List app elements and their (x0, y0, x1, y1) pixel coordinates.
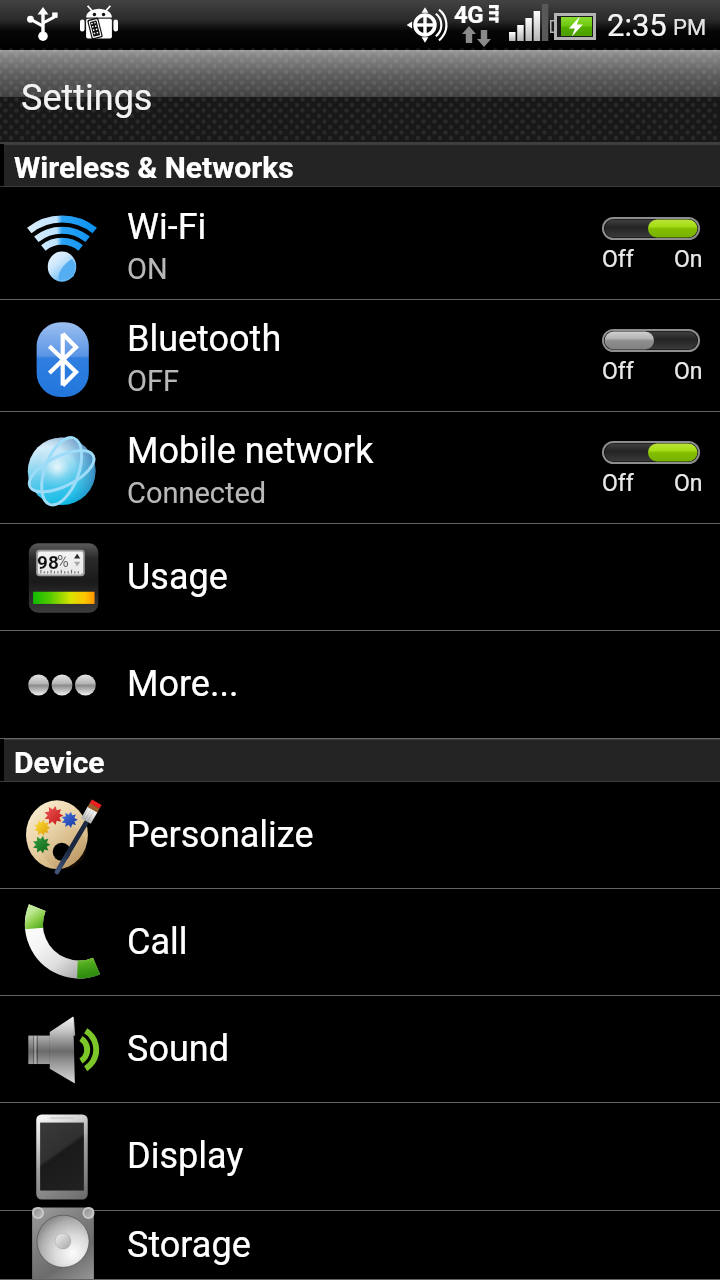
staticText: 4G (454, 1, 484, 29)
staticText: Display (127, 1135, 244, 1177)
staticText: Off (602, 470, 634, 497)
staticText: Call (127, 921, 188, 963)
button[interactable]: Turn off (596, 207, 706, 279)
staticText: 98 (37, 551, 59, 573)
button[interactable]: Bluetooth (0, 300, 720, 412)
staticText: On (674, 470, 703, 497)
staticText: Personalize (127, 814, 314, 856)
button[interactable]: Sound (0, 996, 720, 1103)
staticText: Storage (127, 1224, 251, 1266)
staticText: Bluetooth (127, 318, 282, 360)
staticText: % (57, 552, 69, 571)
staticText: Sound (127, 1028, 229, 1070)
staticText: Device (14, 745, 105, 780)
button[interactable]: Wi-Fi (0, 188, 720, 300)
button[interactable]: Storage (0, 1211, 720, 1280)
staticText: On (674, 358, 703, 385)
staticText: Usage (127, 556, 228, 598)
button[interactable]: Turn on (596, 319, 706, 391)
staticText: Wireless & Networks (14, 150, 294, 185)
button[interactable]: 98 (0, 524, 720, 631)
staticText: OFF (127, 364, 180, 398)
button[interactable]: Personalize (0, 783, 720, 889)
staticText: Mobile network (127, 430, 374, 472)
button[interactable]: Call (0, 889, 720, 996)
staticText: More... (127, 663, 239, 705)
staticText: Settings (21, 77, 153, 119)
staticText: ON (127, 252, 168, 286)
staticText: Wi-Fi (127, 206, 207, 248)
button[interactable]: More... (0, 631, 720, 739)
staticText: Off (602, 246, 634, 273)
staticText: Connected (127, 476, 267, 510)
button[interactable]: Display (0, 1103, 720, 1211)
staticText: Off (602, 358, 634, 385)
staticText: PM (673, 15, 707, 41)
button[interactable]: Turn off (596, 431, 706, 503)
button[interactable]: Mobile network (0, 412, 720, 524)
staticText: On (674, 246, 703, 273)
staticText: 2:35 (607, 7, 667, 43)
